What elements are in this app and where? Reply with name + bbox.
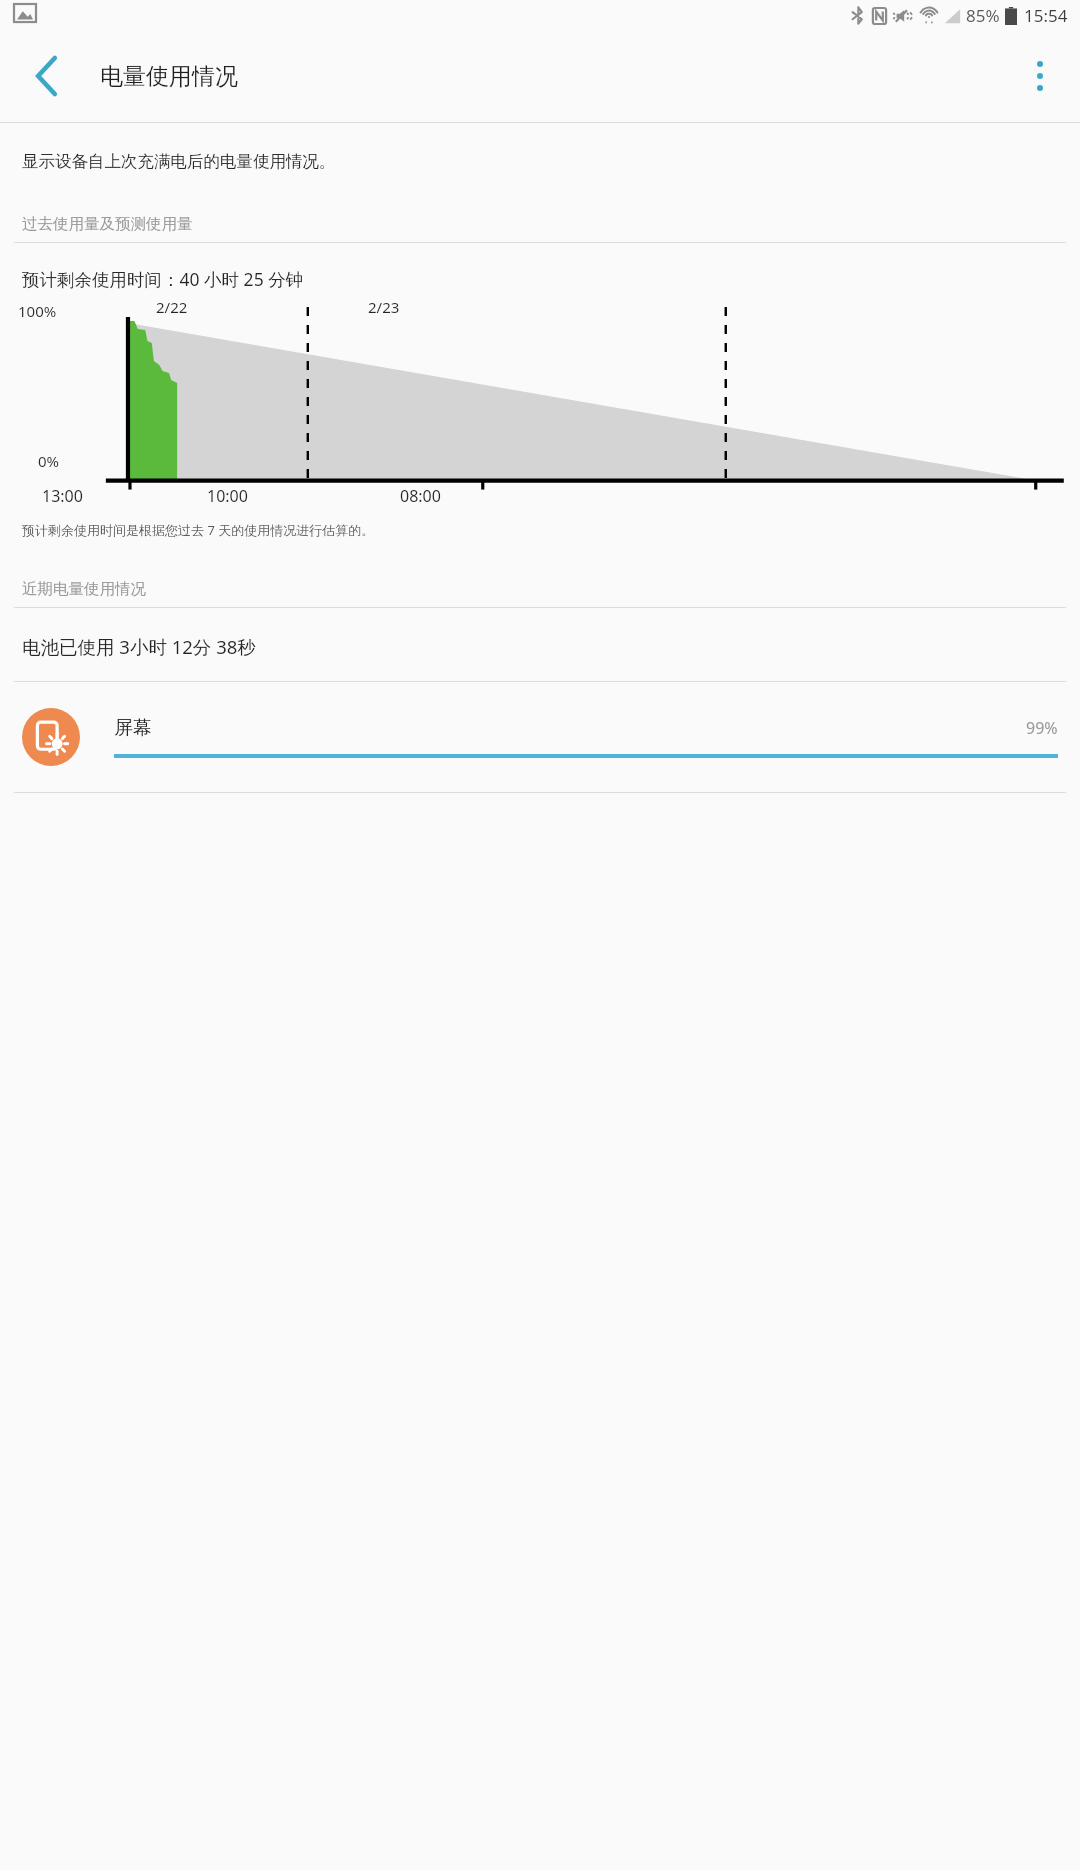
staticText: 08:00 [400,485,441,507]
staticText: 预计剩余使用时间：40 小时 25 分钟 [22,267,304,291]
staticText: 2/22 [156,297,188,317]
staticText: 预计剩余使用时间是根据您过去 7 天的使用情况进行估算的。 [22,521,375,539]
staticText: 100% [18,301,57,321]
button[interactable]: More options [1012,48,1068,104]
staticText: 13:00 [42,485,83,507]
staticText: 屏幕 [114,716,152,740]
staticText: 电量使用情况 [100,62,238,91]
staticText: 10:00 [207,485,248,507]
staticText: 2/23 [368,297,400,317]
staticText: 电池已使用 3小时 12分 38秒 [22,634,256,659]
button[interactable]: Back [16,45,78,107]
staticText: 99% [1026,717,1058,739]
staticText: 过去使用量及预测使用量 [22,214,193,234]
staticText: 15:54 [1024,4,1068,27]
staticText: 85% [966,4,1000,27]
staticText: 近期电量使用情况 [22,579,146,599]
staticText: 0% [38,451,60,471]
staticText: 显示设备自上次充满电后的电量使用情况。 [22,151,336,172]
button[interactable]: 屏幕 [0,682,1080,792]
